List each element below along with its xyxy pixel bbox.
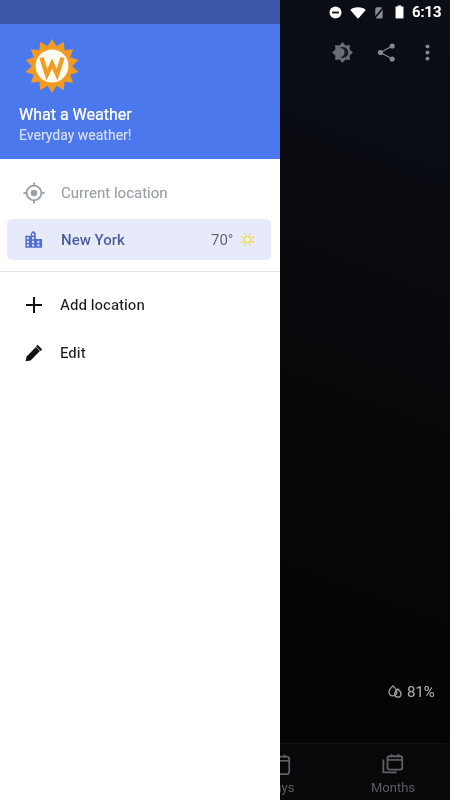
button[interactable]: New York <box>7 219 271 260</box>
button[interactable]: Share <box>366 32 407 73</box>
button[interactable]: Current location <box>0 169 280 217</box>
button[interactable]: Days <box>224 744 337 800</box>
button[interactable]: Edit <box>0 329 280 377</box>
staticText: Months <box>371 780 416 795</box>
staticText: Days <box>266 780 295 795</box>
staticText: What a Weather <box>19 105 132 124</box>
button[interactable]: Months <box>337 744 450 800</box>
staticText: New York <box>61 231 125 249</box>
staticText: 81% <box>407 683 435 701</box>
button[interactable]: More options <box>407 32 448 73</box>
button[interactable]: Add location <box>0 281 280 329</box>
staticText: Current location <box>61 184 168 202</box>
staticText: 70° <box>211 231 234 249</box>
button[interactable]: Toggle dark mode <box>319 29 366 76</box>
staticText: Add location <box>60 296 145 314</box>
staticText: Everyday weather! <box>19 127 132 143</box>
staticText: 6:13 <box>412 3 442 21</box>
staticText: Edit <box>60 344 86 362</box>
